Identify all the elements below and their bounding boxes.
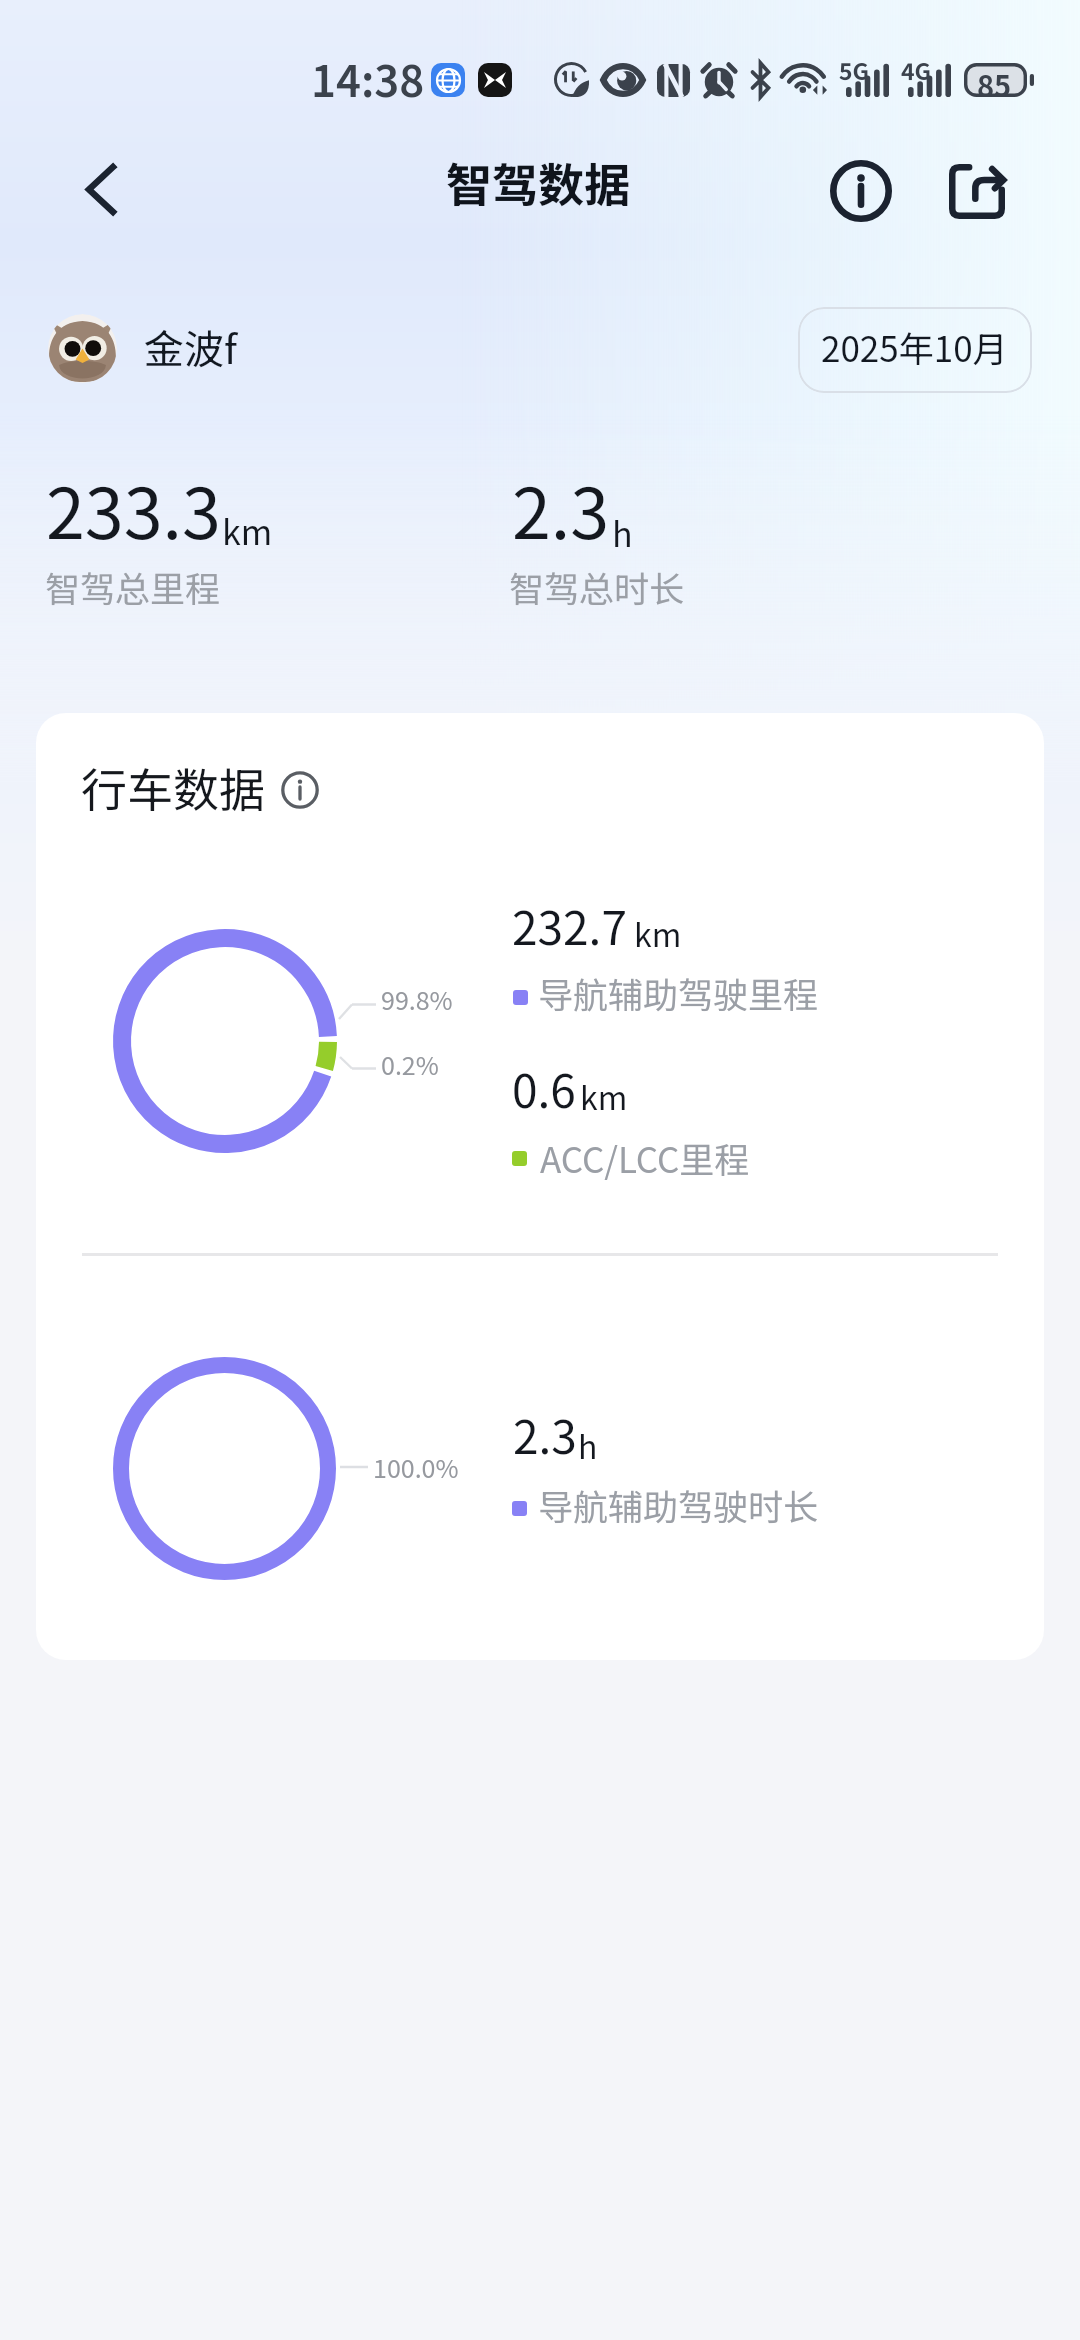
button[interactable]: Information xyxy=(280,770,320,810)
staticText: km xyxy=(634,910,682,956)
staticText: 99.8% xyxy=(381,981,453,1017)
staticText: 2.3 xyxy=(512,458,610,559)
staticText: 0.6 xyxy=(512,1055,576,1122)
button[interactable]: Information xyxy=(818,148,904,234)
button[interactable]: Share xyxy=(934,148,1020,234)
staticText: 导航辅助驾驶时长 xyxy=(538,1479,819,1530)
staticText: 导航辅助驾驶里程 xyxy=(538,967,819,1018)
staticText: h xyxy=(612,508,633,557)
button[interactable]: 2025年10月 xyxy=(798,307,1032,393)
button[interactable]: Back xyxy=(58,146,144,232)
staticText: h xyxy=(578,1422,598,1468)
staticText: 智驾总时长 xyxy=(509,561,685,612)
staticText: 100.0% xyxy=(373,1449,459,1485)
staticText: 14:38 xyxy=(311,47,425,109)
staticText: km xyxy=(580,1073,628,1119)
staticText: 85 xyxy=(977,63,1012,97)
staticText: 行车数据 xyxy=(81,754,265,821)
staticText: 2025年10月 xyxy=(821,321,1008,372)
staticText: 5G xyxy=(839,53,870,86)
staticText: 智驾数据 xyxy=(446,149,630,216)
staticText: 233.3 xyxy=(46,458,221,559)
staticText: km xyxy=(222,506,273,555)
staticText: 金波f xyxy=(144,318,237,376)
staticText: ACC/LCC里程 xyxy=(540,1132,750,1183)
staticText: 232.7 xyxy=(512,892,627,959)
staticText: 4G xyxy=(901,53,932,86)
staticText: 0.2% xyxy=(381,1046,439,1082)
staticText: 2.3 xyxy=(513,1401,577,1468)
staticText: 智驾总里程 xyxy=(45,561,221,612)
